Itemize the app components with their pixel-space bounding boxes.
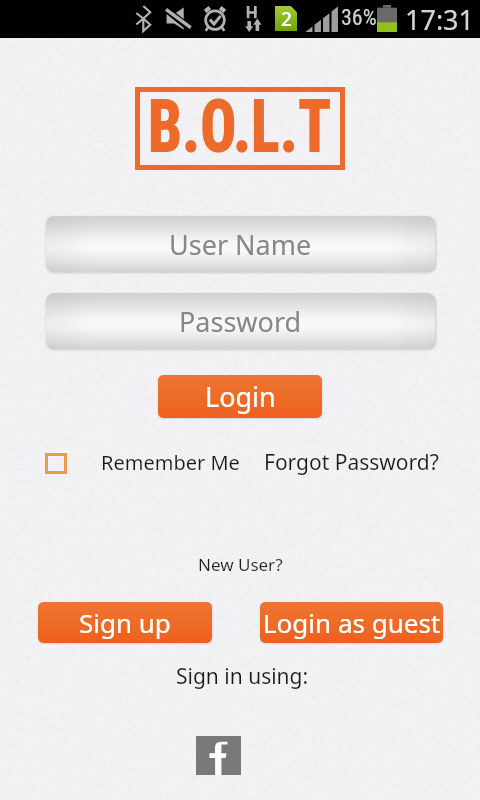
staticText: 36% bbox=[341, 5, 377, 31]
staticText: Password bbox=[179, 303, 302, 340]
staticText: B.O.L.T bbox=[148, 84, 332, 169]
staticText: Sign in using: bbox=[176, 662, 309, 691]
button[interactable]: Sign in with Facebook bbox=[196, 736, 241, 775]
button[interactable]: Login bbox=[158, 375, 322, 418]
button[interactable]: Login as guest bbox=[260, 602, 443, 643]
button[interactable]: User Name bbox=[46, 216, 435, 272]
staticText: 17:31 bbox=[405, 1, 475, 38]
staticText: New User? bbox=[198, 553, 283, 576]
button[interactable]: Forgot Password? bbox=[264, 448, 439, 477]
button[interactable]: Remember Me bbox=[101, 449, 240, 476]
staticText: Login bbox=[205, 378, 276, 415]
button[interactable]: Sign up bbox=[38, 602, 212, 643]
staticText: Login as guest bbox=[263, 605, 441, 640]
staticText: 2 bbox=[281, 6, 292, 31]
button[interactable]: Remember Me checkbox bbox=[45, 453, 67, 474]
staticText: User Name bbox=[169, 226, 312, 263]
button[interactable]: Password bbox=[46, 293, 435, 349]
staticText: Sign up bbox=[79, 605, 171, 640]
